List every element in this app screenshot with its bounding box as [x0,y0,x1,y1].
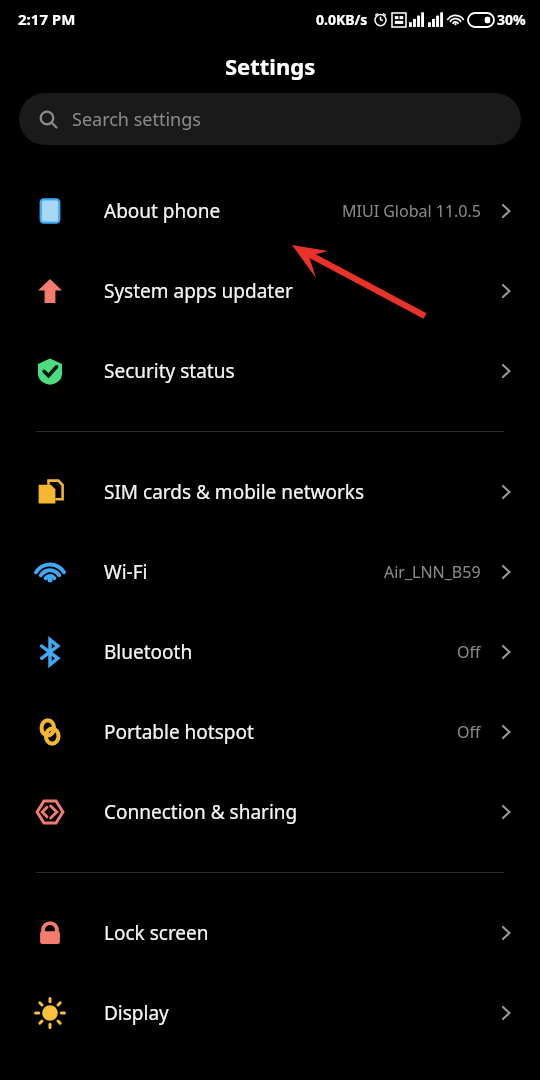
button[interactable]: Connection & sharing [0,772,540,852]
staticText: Search settings [72,107,201,132]
staticText: Connection & sharing [104,799,497,825]
button[interactable]: About phone [0,171,540,251]
button[interactable]: System apps updater [0,251,540,331]
staticText: Off [457,721,481,743]
staticText: Wi-Fi [104,559,384,585]
button[interactable]: SIM cards & mobile networks [0,452,540,532]
staticText: Security status [104,358,497,384]
staticText: Bluetooth [104,639,457,665]
staticText: System apps updater [104,278,497,304]
button[interactable]: Bluetooth [0,612,540,692]
staticText: About phone [104,198,342,224]
staticText: SIM cards & mobile networks [104,479,497,505]
button[interactable]: Lock screen [0,893,540,973]
staticText: 0.0KB/s [316,10,368,29]
button[interactable]: Search settings [19,93,521,145]
button[interactable]: Display [0,973,540,1053]
staticText: Lock screen [104,920,497,946]
staticText: 30% [497,10,526,29]
staticText: Display [104,1000,497,1026]
button[interactable]: Portable hotspot [0,692,540,772]
staticText: Portable hotspot [104,719,457,745]
staticText: Air_LNN_B59 [384,561,481,583]
staticText: 2:17 PM [18,9,76,29]
staticText: MIUI Global 11.0.5 [342,200,481,222]
button[interactable]: Wi-Fi [0,532,540,612]
button[interactable]: Security status [0,331,540,411]
staticText: Settings [225,51,316,81]
staticText: Off [457,641,481,663]
